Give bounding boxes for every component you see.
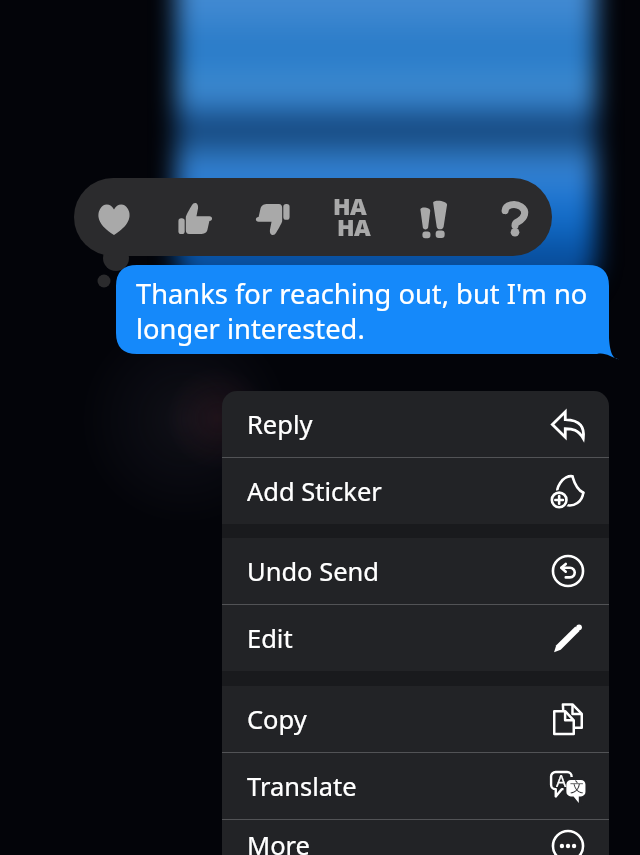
button[interactable]: Copy [222,686,609,752]
staticText: Edit [247,621,293,656]
button[interactable]: More [222,820,609,855]
button[interactable]: Thanks for reaching out, but I'm no long… [116,265,610,356]
button[interactable]: Like [154,178,234,256]
staticText: Translate [247,769,357,804]
button[interactable]: Question [474,178,552,256]
button[interactable]: Edit [222,605,609,671]
staticText: Reply [247,407,313,442]
staticText: A [556,770,567,792]
button[interactable]: Haha [314,178,394,256]
button[interactable]: Translate [222,753,609,819]
button[interactable]: Reply [222,391,609,457]
button[interactable]: Undo Send [222,538,609,604]
staticText: Thanks for reaching out, but I'm no long… [136,275,596,347]
staticText: 文 [570,779,584,797]
button[interactable]: Love [74,178,154,256]
button[interactable]: Add Sticker [222,458,609,524]
button[interactable]: Dislike [234,178,314,256]
staticText: Undo Send [247,554,379,589]
staticText: Copy [247,702,307,737]
staticText: HA [337,211,371,242]
button[interactable]: Emphasize [394,178,474,256]
staticText: Add Sticker [247,474,382,509]
staticText: HA [333,190,367,221]
staticText: More [247,828,310,855]
